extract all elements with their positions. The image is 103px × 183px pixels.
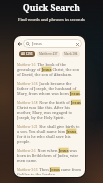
staticText: All 1293 bbox=[21, 52, 33, 56]
staticText: Matthew 1:1 The book of the genealogy of… bbox=[17, 62, 82, 77]
button[interactable]: Matthew 1:21 She shall give birth to a s… bbox=[17, 122, 82, 146]
button[interactable]: Matthew 1:18 Now the birth of Jesus Chri… bbox=[17, 98, 82, 122]
staticText: Mark 284 bbox=[64, 52, 78, 56]
staticText: Find words and phrases in seconds bbox=[18, 17, 85, 22]
button[interactable]: All 1293 bbox=[19, 51, 35, 57]
staticText: Matthew 1:16 Jacob became the father of … bbox=[17, 81, 82, 96]
button[interactable]: Matthew 2:1 Now when Jesus was born in B… bbox=[17, 146, 82, 165]
button[interactable]: Matthew 437 bbox=[37, 51, 60, 57]
button[interactable]: Mark 284 bbox=[62, 51, 80, 57]
button[interactable]: Matthew 1:1 The book of the genealogy of… bbox=[17, 60, 82, 79]
staticText: Quick Search bbox=[23, 2, 80, 14]
button[interactable]: Matthew 1:16 Jacob became the father of … bbox=[17, 79, 82, 98]
button[interactable]: Jesus bbox=[23, 39, 82, 48]
button[interactable]: Clear search bbox=[75, 42, 79, 46]
button[interactable]: Matthew 3:13 Then Jesus came from Galile… bbox=[17, 165, 82, 177]
button[interactable]: Back bbox=[16, 40, 23, 47]
staticText: Matthew 1:21 She shall give birth to a s… bbox=[17, 124, 82, 144]
staticText: Matthew 2:1 Now when Jesus was born in B… bbox=[17, 148, 82, 163]
staticText: Matthew 1:18 Now the birth of Jesus Chri… bbox=[17, 100, 82, 120]
staticText: Jesus bbox=[32, 41, 42, 46]
staticText: Matthew 437 bbox=[39, 52, 58, 56]
staticText: Matthew 3:13 Then Jesus came from Galile… bbox=[17, 167, 82, 175]
